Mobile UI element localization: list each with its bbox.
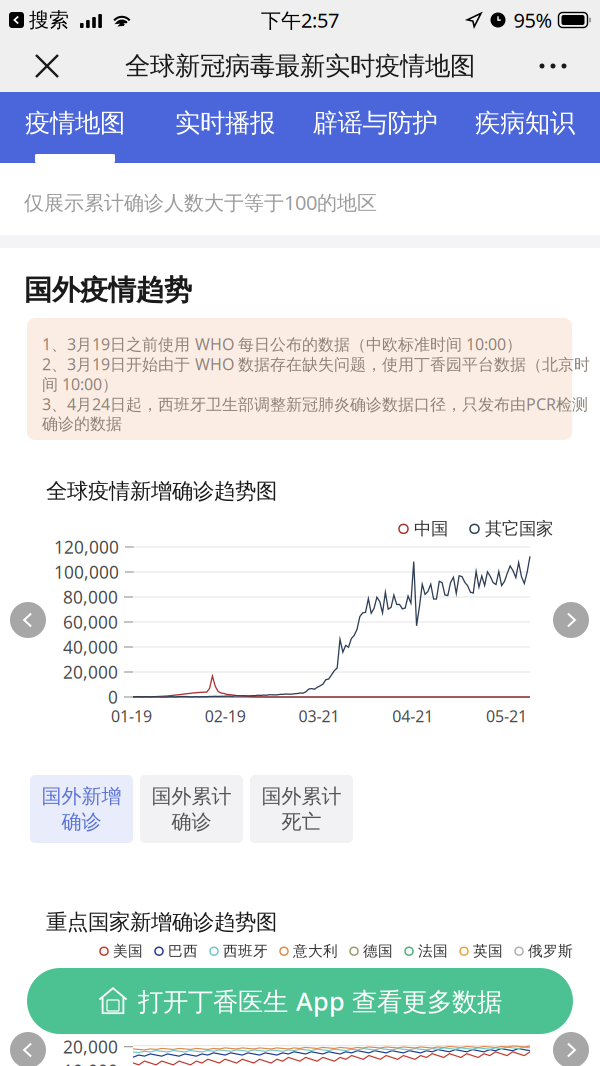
- staticText: 意大利: [293, 942, 338, 960]
- staticText: 巴西: [168, 942, 198, 960]
- button[interactable]: Next chart: [553, 1032, 589, 1066]
- staticText: 2、3月19日开始由于 WHO 数据存在缺失问题，使用丁香园平台数据（北京时: [42, 353, 590, 375]
- button[interactable]: 国外累计: [250, 775, 353, 843]
- button[interactable]: 疫情地图: [0, 92, 150, 154]
- staticText: 1、3月19日之前使用 WHO 每日公布的数据（中欧标准时间 10:00）: [42, 333, 522, 355]
- staticText: 02-19: [205, 705, 246, 727]
- staticText: 确诊: [171, 809, 211, 834]
- staticText: 下午2:57: [261, 7, 339, 33]
- staticText: 04-21: [392, 705, 433, 727]
- staticText: 辟谣与防护: [312, 107, 437, 138]
- button[interactable]: 国外累计: [140, 775, 243, 843]
- staticText: 全球疫情新增确诊趋势图: [46, 478, 277, 504]
- staticText: 国外累计: [261, 784, 341, 808]
- button[interactable]: Previous chart: [10, 1032, 46, 1066]
- staticText: 3、4月24日起，西班牙卫生部调整新冠肺炎确诊数据口径，只发布由PCR检测: [42, 393, 588, 415]
- staticText: 美国: [113, 942, 143, 960]
- staticText: 120,000: [54, 535, 119, 558]
- button[interactable]: 辟谣与防护: [300, 92, 450, 154]
- staticText: 国外累计: [151, 784, 231, 808]
- staticText: 确诊: [61, 809, 101, 834]
- staticText: 实时播报: [175, 107, 275, 138]
- staticText: 0: [108, 685, 118, 708]
- staticText: 80,000: [63, 585, 118, 608]
- button[interactable]: 疾病知识: [450, 92, 600, 154]
- staticText: 仅展示累计确诊人数大于等于100的地区: [24, 189, 377, 216]
- staticText: 德国: [363, 942, 393, 960]
- staticText: 打开丁香医生 App 查看更多数据: [138, 984, 502, 1018]
- button[interactable]: More: [506, 40, 600, 92]
- staticText: 其它国家: [485, 518, 553, 539]
- staticText: 60,000: [63, 610, 118, 633]
- staticText: 10,000: [63, 1059, 118, 1066]
- staticText: 死亡: [281, 809, 321, 834]
- staticText: 间 10:00）: [42, 373, 118, 395]
- staticText: 全球新冠病毒最新实时疫情地图: [125, 50, 475, 81]
- staticText: 搜索: [29, 8, 69, 32]
- button[interactable]: Close: [0, 40, 94, 92]
- staticText: 40,000: [63, 635, 118, 658]
- staticText: 国外疫情趋势: [24, 273, 192, 307]
- staticText: 确诊的数据: [42, 414, 122, 434]
- staticText: 疾病知识: [475, 107, 575, 138]
- staticText: 20,000: [63, 1035, 118, 1058]
- staticText: 疫情地图: [25, 107, 125, 138]
- button[interactable]: 实时播报: [150, 92, 300, 154]
- button[interactable]: Previous chart: [10, 602, 46, 638]
- staticText: 俄罗斯: [528, 942, 573, 960]
- staticText: 01-19: [111, 705, 152, 727]
- staticText: 95%: [513, 7, 552, 33]
- staticText: 中国: [414, 518, 448, 539]
- staticText: 重点国家新增确诊趋势图: [46, 909, 277, 935]
- staticText: 03-21: [298, 705, 339, 727]
- staticText: 西班牙: [223, 942, 268, 960]
- button[interactable]: Next chart: [553, 602, 589, 638]
- button[interactable]: 国外新增: [30, 775, 133, 843]
- staticText: 国外新增: [41, 784, 121, 808]
- staticText: 20,000: [63, 660, 118, 683]
- staticText: 法国: [418, 942, 448, 960]
- staticText: 英国: [473, 942, 503, 960]
- staticText: 100,000: [54, 560, 119, 583]
- staticText: 05-21: [486, 705, 527, 727]
- button[interactable]: 打开丁香医生 App 查看更多数据: [27, 968, 573, 1034]
